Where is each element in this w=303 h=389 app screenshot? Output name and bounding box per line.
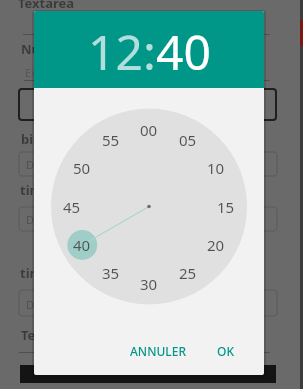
staticText: 10 [207, 158, 225, 178]
button[interactable]: 15 [212, 197, 240, 217]
button[interactable]: 20 [202, 235, 230, 255]
staticText: time [20, 264, 50, 282]
button[interactable]: 45 [58, 197, 86, 217]
staticText: D [26, 212, 35, 227]
staticText: birthday [21, 130, 77, 148]
staticText: D [26, 297, 35, 312]
staticText: 20 [207, 235, 225, 255]
staticText: 50 [73, 158, 91, 178]
staticText: D [26, 157, 35, 172]
button[interactable]: 05 [174, 130, 202, 150]
button[interactable]: 25 [174, 263, 202, 283]
button[interactable]: 55 [97, 130, 125, 150]
staticText: 40 [73, 235, 91, 255]
staticText: 05 [179, 130, 197, 150]
staticText: : [143, 19, 156, 84]
button[interactable]: 35 [97, 263, 125, 283]
staticText: Number [21, 40, 75, 58]
button[interactable]: 50 [68, 158, 96, 178]
staticText: 45 [63, 197, 81, 217]
staticText: 55 [102, 130, 120, 150]
button[interactable]: 10 [202, 158, 230, 178]
staticText: ANNULER [130, 343, 187, 359]
staticText: 00 [140, 120, 158, 140]
staticText: 15 [217, 197, 235, 217]
staticText: 30 [140, 274, 158, 294]
staticText: Example [25, 65, 70, 80]
staticText: time [20, 181, 50, 199]
button[interactable]: 30 [135, 274, 163, 294]
button[interactable]: OK [209, 333, 242, 369]
button[interactable]: 40 [68, 235, 96, 255]
staticText: Textarea [18, 0, 75, 12]
staticText: 40 [156, 19, 211, 84]
staticText: OK [217, 343, 234, 359]
staticText: 35 [102, 263, 120, 283]
staticText: Tel [21, 326, 40, 344]
button[interactable]: ANNULER [122, 333, 195, 369]
button[interactable]: 00 [135, 120, 163, 140]
staticText: 25 [179, 263, 197, 283]
staticText: 12 [88, 19, 143, 84]
